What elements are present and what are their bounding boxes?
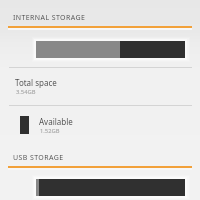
staticText: Total space [15, 77, 57, 88]
button[interactable]: Available [0, 106, 200, 144]
staticText: 3.54GB [16, 88, 36, 96]
staticText: USB STORAGE [13, 153, 64, 163]
other: Storage usage [36, 41, 185, 58]
other: Storage usage [36, 179, 185, 196]
button[interactable]: Total space [0, 68, 200, 105]
staticText: 1.52GB [40, 127, 60, 135]
staticText: INTERNAL STORAGE [13, 13, 86, 23]
staticText: Available [39, 116, 73, 127]
